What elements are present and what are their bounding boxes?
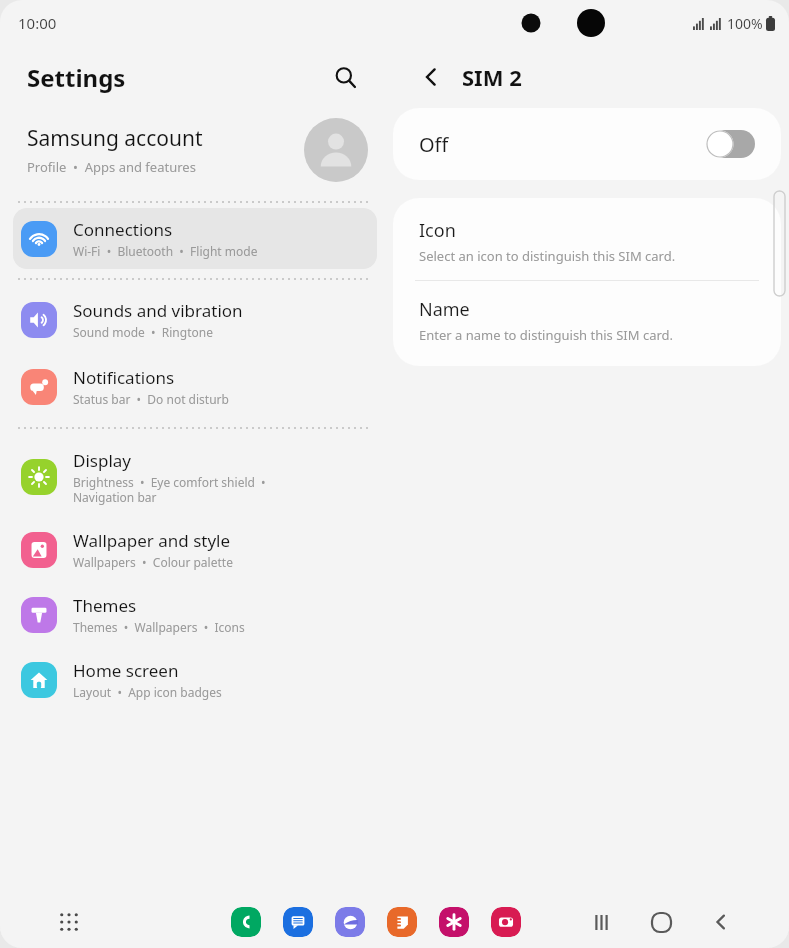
button[interactable]: Back [707,908,735,936]
staticText: SIM 2 [462,62,522,92]
staticText: Layout • App icon badges [73,684,222,700]
staticText: Enter a name to distinguish this SIM car… [419,326,674,344]
staticText: Wi-Fi • Bluetooth • Flight mode [73,243,258,259]
staticText: Name [419,297,470,322]
staticText: Sound mode • Ringtone [73,324,213,340]
staticText: Connections [73,218,173,241]
staticText: Status bar • Do not disturb [73,391,229,407]
button[interactable]: Display [13,439,377,515]
button[interactable]: Home screen [13,649,377,710]
button[interactable]: Name [393,281,781,366]
staticText: Icon [419,218,456,243]
staticText: Home screen [73,659,179,682]
staticText: Brightness • Eye comfort shield • Naviga… [73,474,266,505]
staticText: Sounds and vibration [73,299,243,322]
staticText: Select an icon to distinguish this SIM c… [419,247,676,265]
staticText: Wallpapers • Colour palette [73,554,233,570]
button[interactable]: Back [412,58,450,96]
staticText: Display [73,449,131,472]
button[interactable]: Messages [283,907,313,937]
button[interactable]: Camera [491,907,521,937]
button[interactable]: Samsung account [0,108,390,196]
staticText: Themes [73,594,137,617]
staticText: Off [419,131,449,158]
staticText: Profile • Apps and features [27,158,196,176]
button[interactable]: Notes [387,907,417,937]
staticText: Settings [27,61,126,94]
button[interactable]: Search [326,58,364,96]
button[interactable]: Notifications [13,356,377,417]
staticText: Wallpaper and style [73,529,231,552]
staticText: Notifications [73,366,175,389]
button[interactable]: Icon [393,198,781,280]
staticText: 100% [727,14,763,33]
button[interactable]: Home [647,908,675,936]
button[interactable]: Themes [13,584,377,645]
button[interactable]: Sounds and vibration [13,289,377,350]
button[interactable]: Connections [13,208,377,269]
staticText: Themes • Wallpapers • Icons [73,619,245,635]
button[interactable]: Apps [52,905,86,939]
staticText: 10:00 [18,13,57,33]
button[interactable]: Galaxy Store [439,907,469,937]
button[interactable]: Recents [587,908,615,936]
button[interactable]: Phone [231,907,261,937]
button[interactable]: Wallpaper and style [13,519,377,580]
staticText: Samsung account [27,124,203,153]
button[interactable]: Off [393,108,781,180]
button[interactable]: Internet [335,907,365,937]
